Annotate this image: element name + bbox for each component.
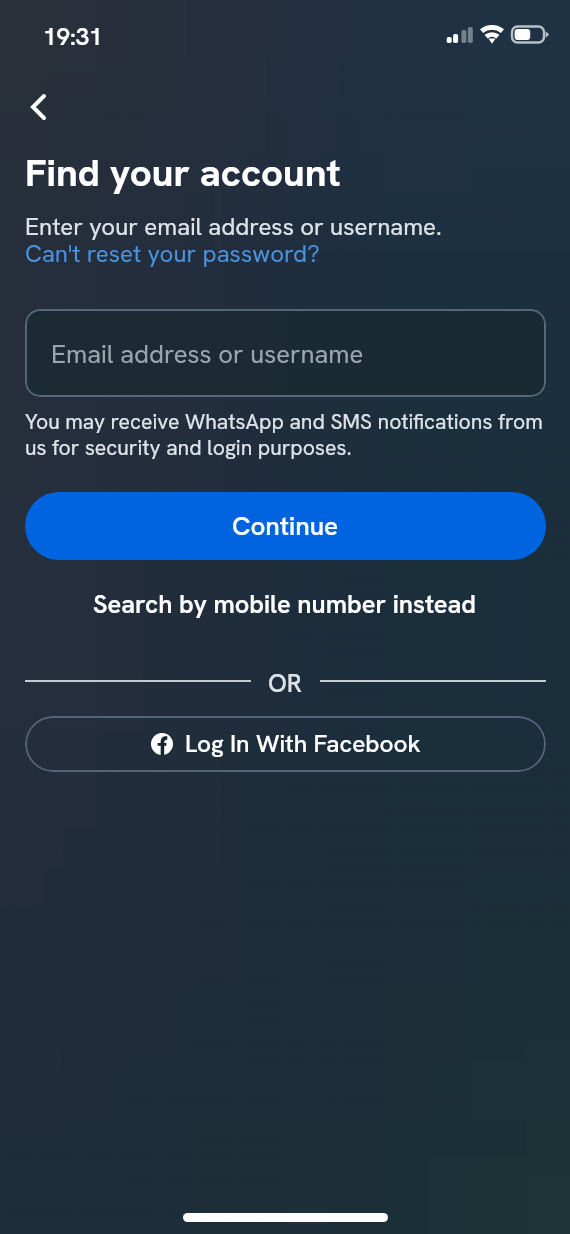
staticText: Find your account xyxy=(25,147,341,197)
staticText: Can't reset your password? xyxy=(25,238,320,269)
button[interactable]: Back xyxy=(16,84,61,129)
staticText: OR xyxy=(268,667,303,695)
staticText: Log In With Facebook xyxy=(185,728,421,760)
staticText: You may receive WhatsApp and SMS notific… xyxy=(25,408,550,461)
button[interactable]: Log In With Facebook xyxy=(25,716,546,772)
staticText: Continue xyxy=(232,509,339,543)
button[interactable]: Search by mobile number instead xyxy=(0,578,570,630)
staticText: Enter your email address or username. xyxy=(25,211,442,242)
staticText: Search by mobile number instead xyxy=(93,588,477,621)
button[interactable]: Can't reset your password? xyxy=(25,238,320,269)
staticText: 19:31 xyxy=(43,21,103,52)
button[interactable]: Email address or username xyxy=(25,309,546,397)
button[interactable]: Continue xyxy=(25,492,546,560)
staticText: Email address or username xyxy=(51,337,364,370)
